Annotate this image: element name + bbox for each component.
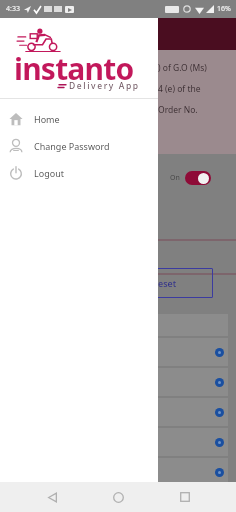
staticText: Logout xyxy=(34,167,64,179)
staticText: 16% xyxy=(217,4,231,14)
button[interactable]: Logout xyxy=(0,159,158,186)
staticText: 4 (e) of the xyxy=(158,83,201,95)
staticText: Order No. xyxy=(158,104,198,116)
staticText: 4:33 xyxy=(6,4,20,14)
staticText: Home xyxy=(34,113,60,125)
button[interactable]: Home xyxy=(0,105,158,132)
button[interactable]: Change Password xyxy=(0,132,158,159)
staticText: eset xyxy=(158,277,177,289)
staticText: ) of G.O (Ms) xyxy=(158,62,207,74)
staticText: Change Password xyxy=(34,140,110,152)
button[interactable]: Back xyxy=(37,482,67,512)
button[interactable]: Recent apps xyxy=(170,482,200,512)
staticText: Delivery App xyxy=(69,80,140,92)
button[interactable]: eset xyxy=(155,268,213,298)
button[interactable] xyxy=(158,428,228,456)
button[interactable]: Toggle xyxy=(185,171,211,185)
staticText: On xyxy=(170,173,180,183)
button[interactable] xyxy=(158,398,228,426)
button[interactable]: Home xyxy=(103,482,133,512)
button[interactable] xyxy=(158,458,228,486)
button[interactable] xyxy=(158,368,228,396)
button[interactable] xyxy=(158,338,228,366)
staticText: instanto xyxy=(14,48,134,89)
